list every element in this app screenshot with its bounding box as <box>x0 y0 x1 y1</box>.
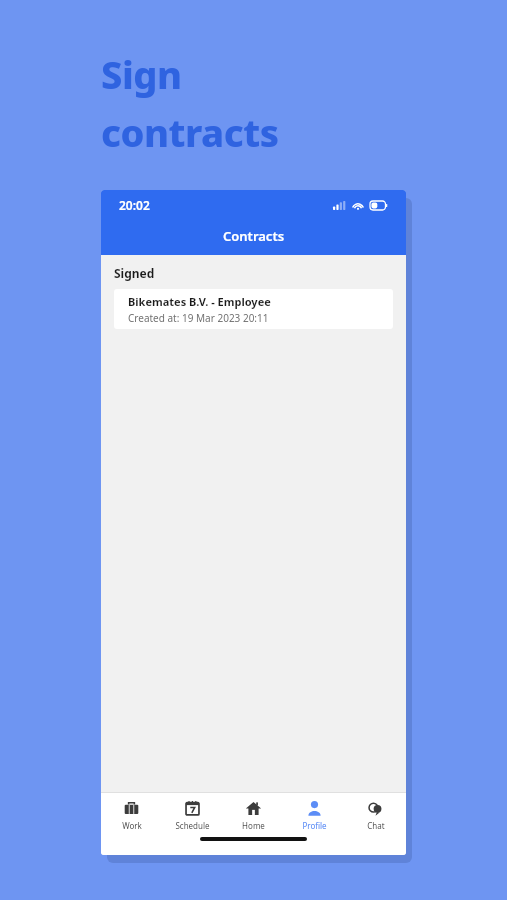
staticText: 20:02 <box>119 197 150 213</box>
staticText: Chat <box>367 820 385 831</box>
staticText: Signed <box>114 265 155 281</box>
staticText: Contracts <box>223 227 285 245</box>
button[interactable]: Profile <box>284 793 345 837</box>
button[interactable]: Work <box>101 793 162 837</box>
button[interactable]: Chat <box>345 793 406 837</box>
staticText: Created at: 19 Mar 2023 20:11 <box>128 311 269 325</box>
staticText: Profile <box>302 820 327 831</box>
button[interactable]: Bikemates B.V. - Employee <box>114 289 393 329</box>
button[interactable]: Home <box>223 793 284 837</box>
staticText: contracts <box>101 106 279 158</box>
staticText: Sign <box>101 48 182 100</box>
staticText: Bikemates B.V. - Employee <box>128 294 271 309</box>
button[interactable]: Schedule <box>162 793 223 837</box>
staticText: Schedule <box>175 820 210 831</box>
staticText: Home <box>242 820 265 831</box>
staticText: Work <box>122 820 142 831</box>
